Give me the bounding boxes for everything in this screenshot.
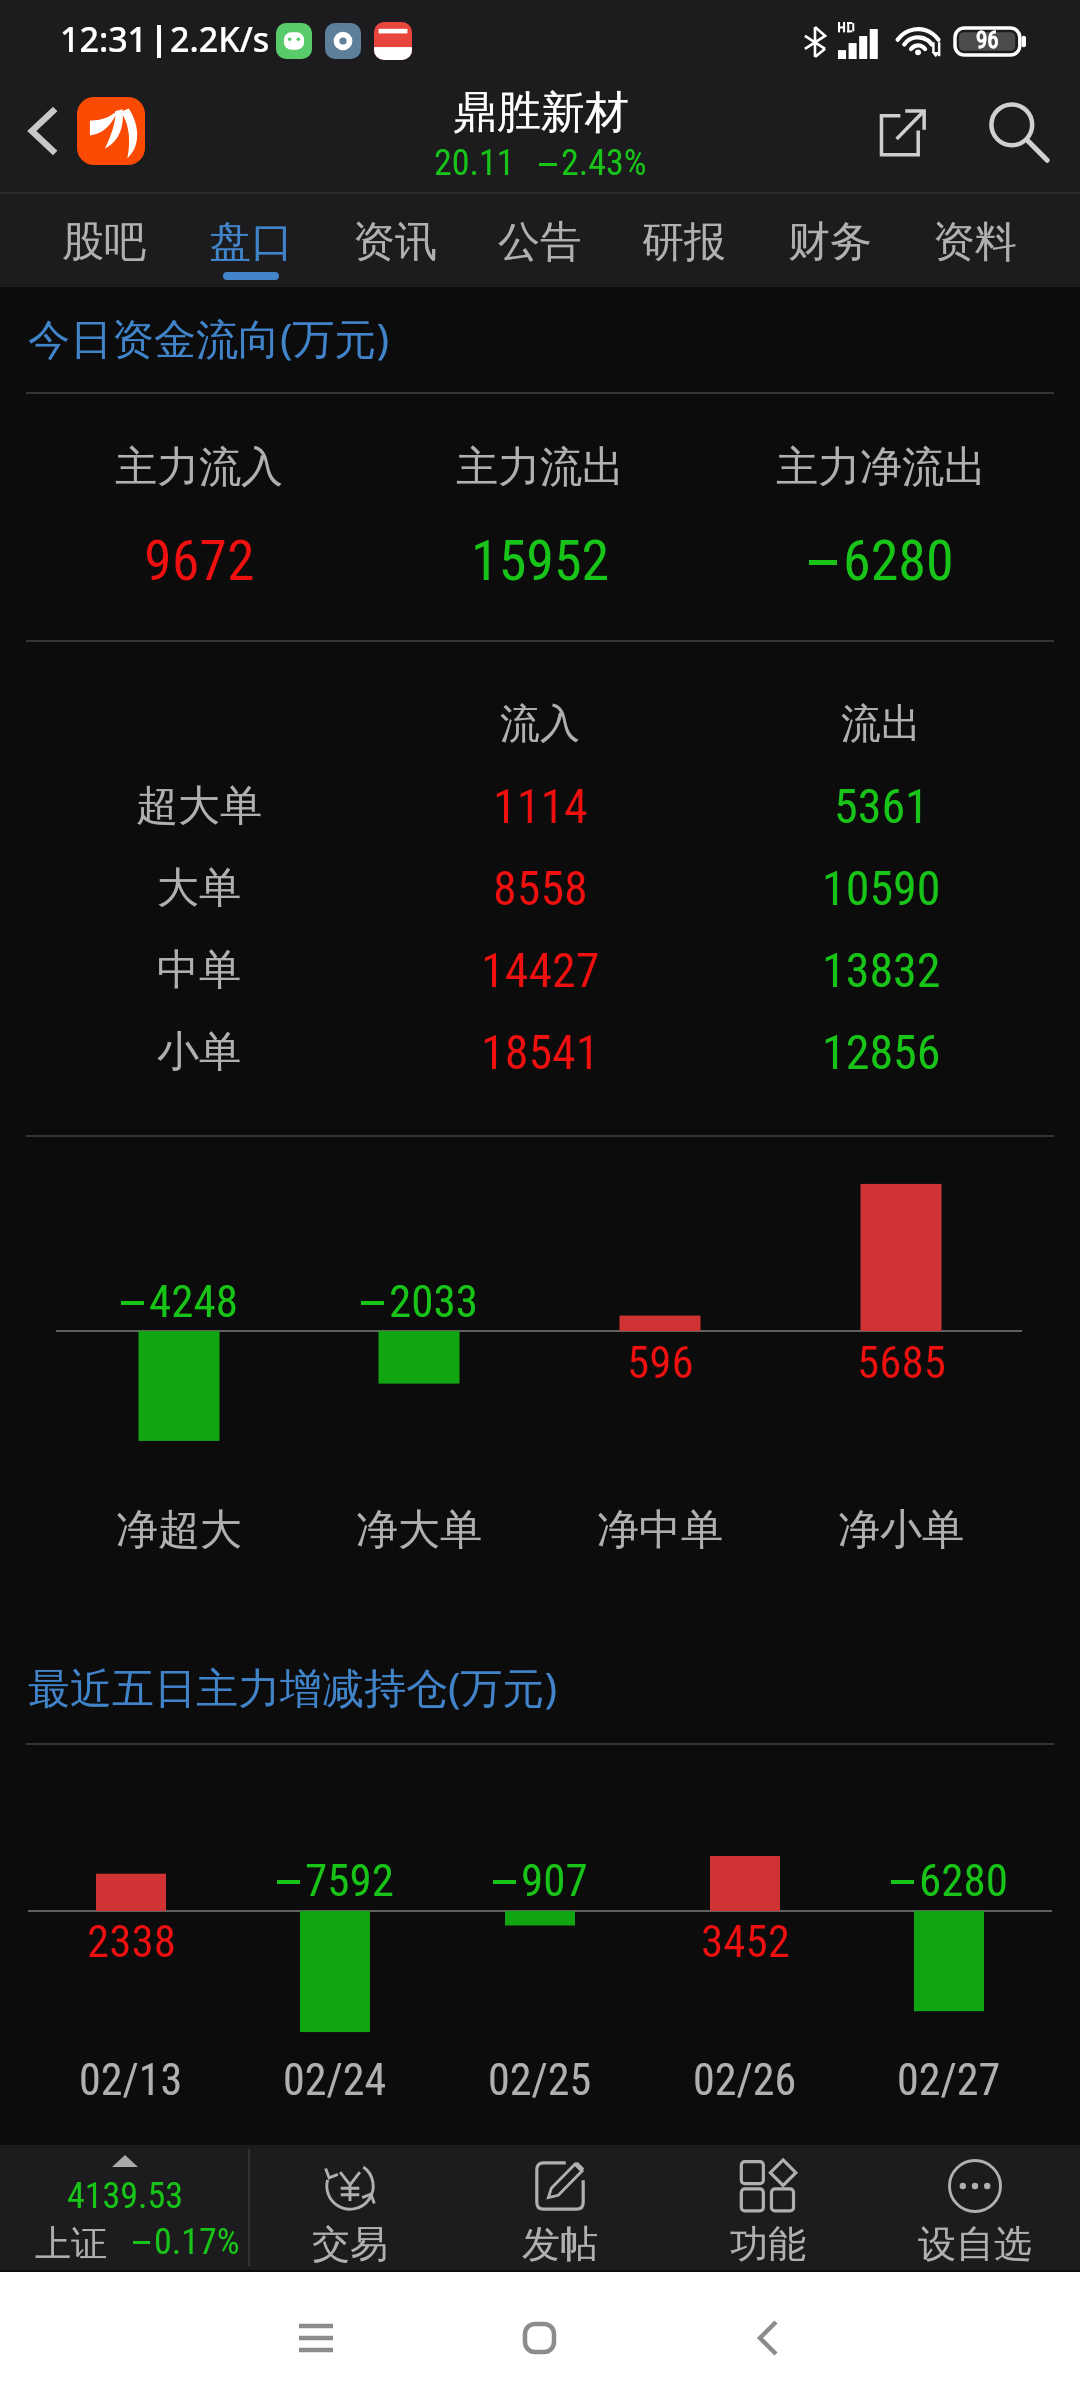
staticText: 3452	[701, 1915, 790, 1968]
staticText: 最近五日主力增减持仓(万元)	[28, 1658, 558, 1715]
staticText: 14427	[481, 942, 600, 998]
button[interactable]: 交易	[250, 2145, 450, 2270]
staticText: 2338	[87, 1915, 176, 1968]
staticText: 资料	[933, 216, 1017, 269]
button[interactable]: 研报	[612, 192, 756, 287]
staticText: 0.17%	[154, 2221, 240, 2261]
staticText: 1114	[493, 778, 588, 834]
button[interactable]: 功能	[668, 2145, 868, 2270]
staticText: 9672	[144, 528, 255, 594]
staticText: 盘口	[209, 216, 293, 269]
staticText: 净超大	[116, 1504, 242, 1557]
button[interactable]: 发帖	[460, 2145, 660, 2270]
staticText: 研报	[642, 216, 726, 269]
button[interactable]: Search	[973, 86, 1063, 176]
button[interactable]: 盘口	[179, 192, 323, 287]
button[interactable]: 资讯	[323, 192, 467, 287]
staticText: 流入	[500, 698, 580, 748]
staticText: 596	[627, 1336, 694, 1389]
staticText: 2.2K/s	[170, 16, 270, 62]
staticText: 财务	[788, 216, 872, 269]
staticText: 功能	[730, 2220, 806, 2268]
button[interactable]: Home	[474, 2272, 604, 2400]
staticText: 净小单	[838, 1504, 964, 1557]
staticText: 超大单	[136, 780, 262, 833]
staticText: 上证	[35, 2221, 107, 2261]
staticText: 02/27	[897, 2054, 1001, 2106]
staticText: 8558	[493, 860, 588, 916]
button[interactable]: 公告	[468, 192, 612, 287]
button[interactable]: Back	[703, 2272, 833, 2400]
staticText: 02/24	[283, 2054, 387, 2106]
staticText: 907	[521, 1854, 588, 1907]
staticText: 发帖	[522, 2220, 598, 2268]
staticText: 2033	[389, 1275, 478, 1328]
staticText: 18541	[481, 1024, 600, 1080]
staticText: 股吧	[62, 216, 146, 269]
staticText: 主力净流出	[776, 441, 986, 494]
staticText: 4248	[149, 1275, 238, 1328]
button[interactable]: 财务	[758, 192, 902, 287]
button[interactable]: Recent apps	[251, 2272, 381, 2400]
staticText: 10590	[822, 860, 941, 916]
staticText: 流出	[841, 698, 921, 748]
staticText: 20.11	[434, 142, 515, 184]
staticText: 5361	[834, 778, 929, 834]
staticText: 中单	[157, 944, 241, 997]
staticText: 96	[976, 27, 999, 54]
staticText: 6280	[919, 1854, 1008, 1907]
button[interactable]: 股吧	[32, 192, 176, 287]
staticText: 鼎胜新材	[453, 85, 629, 140]
staticText: 今日资金流向(万元)	[28, 309, 390, 366]
staticText: 4139.53	[67, 2175, 184, 2215]
staticText: 6280	[843, 528, 954, 594]
staticText: 主力流出	[456, 441, 624, 494]
button[interactable]: 4139.53	[0, 2145, 248, 2270]
staticText: 02/26	[693, 2054, 797, 2106]
button[interactable]: App home	[77, 97, 145, 165]
staticText: 净中单	[597, 1504, 723, 1557]
button[interactable]: Back	[0, 80, 77, 192]
staticText: 小单	[157, 1026, 241, 1079]
staticText: 13832	[822, 942, 941, 998]
staticText: 7592	[305, 1854, 394, 1907]
staticText: 2.43%	[561, 142, 647, 184]
staticText: 主力流入	[115, 441, 283, 494]
staticText: 设自选	[918, 2220, 1032, 2268]
staticText: 5685	[857, 1336, 946, 1389]
button[interactable]: 资料	[903, 192, 1047, 287]
staticText: 12856	[822, 1024, 941, 1080]
staticText: 资讯	[353, 216, 437, 269]
button[interactable]: 设自选	[875, 2145, 1075, 2270]
staticText: 15952	[471, 528, 610, 594]
staticText: 12:31	[60, 16, 148, 62]
staticText: 02/25	[488, 2054, 592, 2106]
staticText: 大单	[157, 862, 241, 915]
staticText: 02/13	[79, 2054, 183, 2106]
staticText: 公告	[498, 216, 582, 269]
staticText: 交易	[312, 2220, 388, 2268]
staticText: 净大单	[356, 1504, 482, 1557]
button[interactable]: Share	[857, 86, 947, 176]
